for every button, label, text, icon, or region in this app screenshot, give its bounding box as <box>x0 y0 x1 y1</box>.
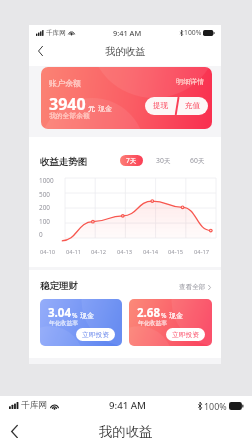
staticText: 3.04 <box>48 305 71 321</box>
staticText: 提现 <box>153 101 169 111</box>
staticText: 元 <box>88 104 95 113</box>
button[interactable]: Back <box>32 43 48 59</box>
staticText: 现金 <box>169 311 183 320</box>
staticText: 3940 <box>49 93 86 115</box>
staticText: 500 <box>39 190 50 199</box>
staticText: 9:41 AM <box>113 28 142 38</box>
staticText: 现金 <box>98 104 112 113</box>
button[interactable]: 账户余额 <box>41 67 212 129</box>
staticText: 年化收益率 <box>49 319 78 326</box>
staticText: % <box>161 311 167 320</box>
staticText: 04-12 <box>91 248 107 256</box>
staticText: 100% <box>204 400 227 412</box>
staticText: 我的收益 <box>105 45 146 58</box>
staticText: 千库网 <box>46 29 66 37</box>
staticText: 明细详情 <box>176 77 204 86</box>
staticText: 立即投资 <box>172 330 200 339</box>
staticText: 收益走势图 <box>40 156 87 168</box>
staticText: % <box>72 311 78 320</box>
staticText: 04-14 <box>143 248 159 256</box>
staticText: 04-11 <box>66 248 82 256</box>
staticText: 100 <box>39 217 50 226</box>
button[interactable]: 立即投资 <box>76 328 115 341</box>
staticText: 账户余额 <box>49 78 81 88</box>
staticText: 9:41 AM <box>109 399 147 412</box>
staticText: 60天 <box>190 156 205 165</box>
button[interactable]: 查看全部 <box>179 283 211 291</box>
staticText: 0 <box>39 230 43 239</box>
staticText: 充值 <box>185 101 201 111</box>
staticText: 04-10 <box>40 248 56 256</box>
staticText: 30天 <box>156 156 171 165</box>
button[interactable]: 3.04 <box>40 299 122 346</box>
staticText: 100% <box>184 28 202 37</box>
staticText: 200 <box>39 203 50 212</box>
button[interactable]: Back <box>4 421 25 438</box>
button[interactable]: 明细详情 <box>176 77 204 86</box>
button[interactable]: 2.68 <box>129 299 212 346</box>
staticText: 我的收益 <box>99 423 153 438</box>
button[interactable]: 60天 <box>190 156 205 165</box>
staticText: 7天 <box>126 156 137 165</box>
staticText: 04-15 <box>168 248 184 256</box>
staticText: 1000 <box>39 176 54 185</box>
staticText: 我的全部余额 <box>49 111 90 120</box>
button[interactable]: 7天 <box>120 155 143 166</box>
button[interactable]: 立即投资 <box>166 328 205 341</box>
button[interactable]: 30天 <box>156 156 171 165</box>
button[interactable]: 提现 <box>145 97 208 115</box>
staticText: 04-13 <box>117 248 133 256</box>
staticText: 年化收益率 <box>138 319 167 326</box>
staticText: 稳定理财 <box>40 280 78 292</box>
staticText: 04-17 <box>194 248 210 256</box>
staticText: 2.68 <box>137 305 160 321</box>
staticText: 千库网 <box>21 400 47 411</box>
staticText: 查看全部 <box>179 283 206 291</box>
staticText: 现金 <box>80 311 94 320</box>
button[interactable]: 充值 <box>145 97 208 115</box>
staticText: 立即投资 <box>82 330 110 339</box>
